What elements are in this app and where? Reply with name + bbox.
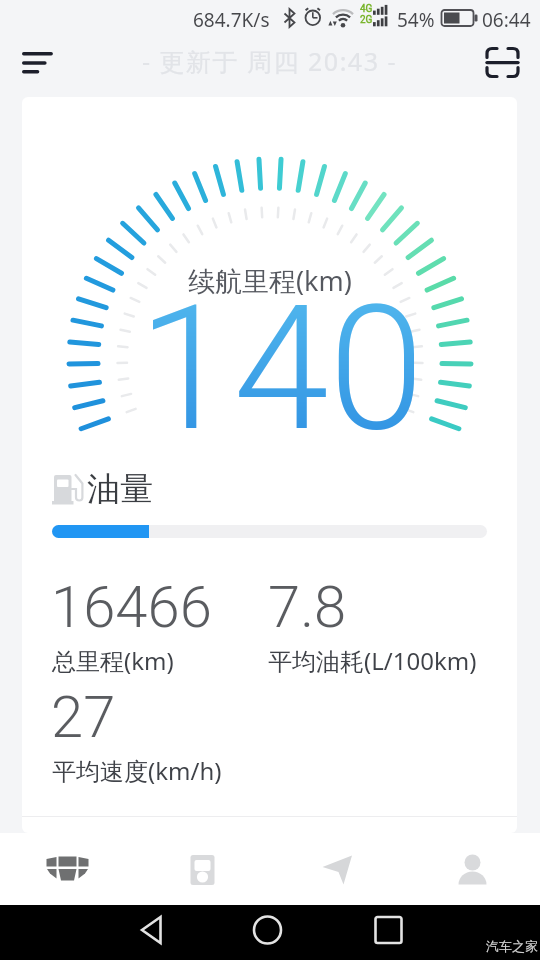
staticText: 140 (138, 268, 425, 470)
button[interactable] (477, 40, 529, 86)
button[interactable] (343, 905, 433, 960)
button[interactable] (0, 833, 135, 905)
staticText: 2G (360, 14, 373, 26)
staticText: 06:44 (482, 7, 531, 33)
staticText: 54% (397, 7, 435, 33)
staticText: 16466 (51, 573, 212, 641)
staticText: 684.7K/s (193, 7, 270, 33)
button[interactable] (10, 42, 66, 84)
button[interactable] (405, 833, 540, 905)
button[interactable] (270, 833, 405, 905)
button[interactable] (222, 905, 312, 960)
staticText: 总里程(km) (52, 644, 174, 677)
staticText: 续航里程(km) (188, 262, 352, 299)
staticText: 平均速度(km/h) (52, 754, 222, 787)
staticText: 汽车之家 (486, 938, 538, 954)
staticText: 油量 (87, 468, 153, 510)
staticText: - 更新于 周四 20:43 - (142, 44, 398, 78)
button[interactable] (121, 905, 211, 960)
staticText: 4G (360, 3, 373, 15)
staticText: 7.8 (268, 573, 347, 641)
button[interactable] (135, 833, 270, 905)
staticText: 平均油耗(L/100km) (268, 644, 477, 677)
staticText: 27 (51, 683, 116, 751)
